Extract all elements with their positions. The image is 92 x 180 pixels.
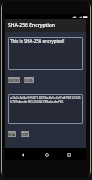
button[interactable]: CLEAR bbox=[24, 77, 34, 83]
staticText: SHA-256 Encryption bbox=[8, 22, 55, 29]
staticText: COPY bbox=[21, 132, 29, 137]
staticText: CLEAR bbox=[24, 78, 34, 83]
staticText: This is SHA-256 encrypted! bbox=[10, 38, 65, 44]
button[interactable]: This is SHA-256 encrypted! bbox=[8, 37, 83, 70]
button[interactable]: COPY bbox=[21, 131, 29, 137]
button[interactable]: Home bbox=[42, 150, 51, 159]
staticText: a1b2c3d4e5f60718293a4b5c6d7e8f9012345678… bbox=[10, 96, 81, 104]
staticText: ENCRYPT bbox=[8, 78, 20, 83]
staticText: SHARE bbox=[8, 132, 16, 137]
button[interactable]: SHARE bbox=[8, 131, 16, 137]
button[interactable]: a1b2c3d4e5f60718293a4b5c6d7e8f9012345678… bbox=[8, 94, 83, 124]
button[interactable]: Back bbox=[18, 150, 27, 159]
button[interactable]: ENCRYPT bbox=[8, 77, 20, 83]
button[interactable]: Recents bbox=[64, 150, 73, 159]
